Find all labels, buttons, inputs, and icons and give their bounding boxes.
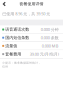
staticText: 套餐使用详情 bbox=[19, 1, 43, 6]
button[interactable]: Back bbox=[0, 0, 8, 8]
staticText: 0.000 分钟 bbox=[41, 27, 59, 32]
button[interactable]: 国内短信条数 bbox=[0, 34, 63, 42]
staticText: 0.000 条数 bbox=[41, 35, 59, 40]
staticText: 仅供 bbox=[2, 65, 8, 68]
staticText: 流量值 bbox=[5, 43, 17, 48]
staticText: 套餐费用 bbox=[5, 52, 21, 56]
button[interactable]: 套餐费用 bbox=[0, 50, 63, 58]
staticText: 语音通话次数 bbox=[5, 27, 29, 32]
staticText: 小提示：账务数据延时统计， bbox=[2, 61, 41, 64]
staticText: 国内短信条数 bbox=[5, 35, 29, 40]
staticText: 39.00 元/月(包月) bbox=[30, 51, 59, 57]
button[interactable]: 语音通话次数 bbox=[0, 26, 63, 34]
staticText: 0.000 MB bbox=[42, 43, 59, 48]
button[interactable]: 流量值 bbox=[0, 42, 63, 50]
staticText: 已使用 8.96 元，共 39.50 元 bbox=[2, 11, 50, 16]
